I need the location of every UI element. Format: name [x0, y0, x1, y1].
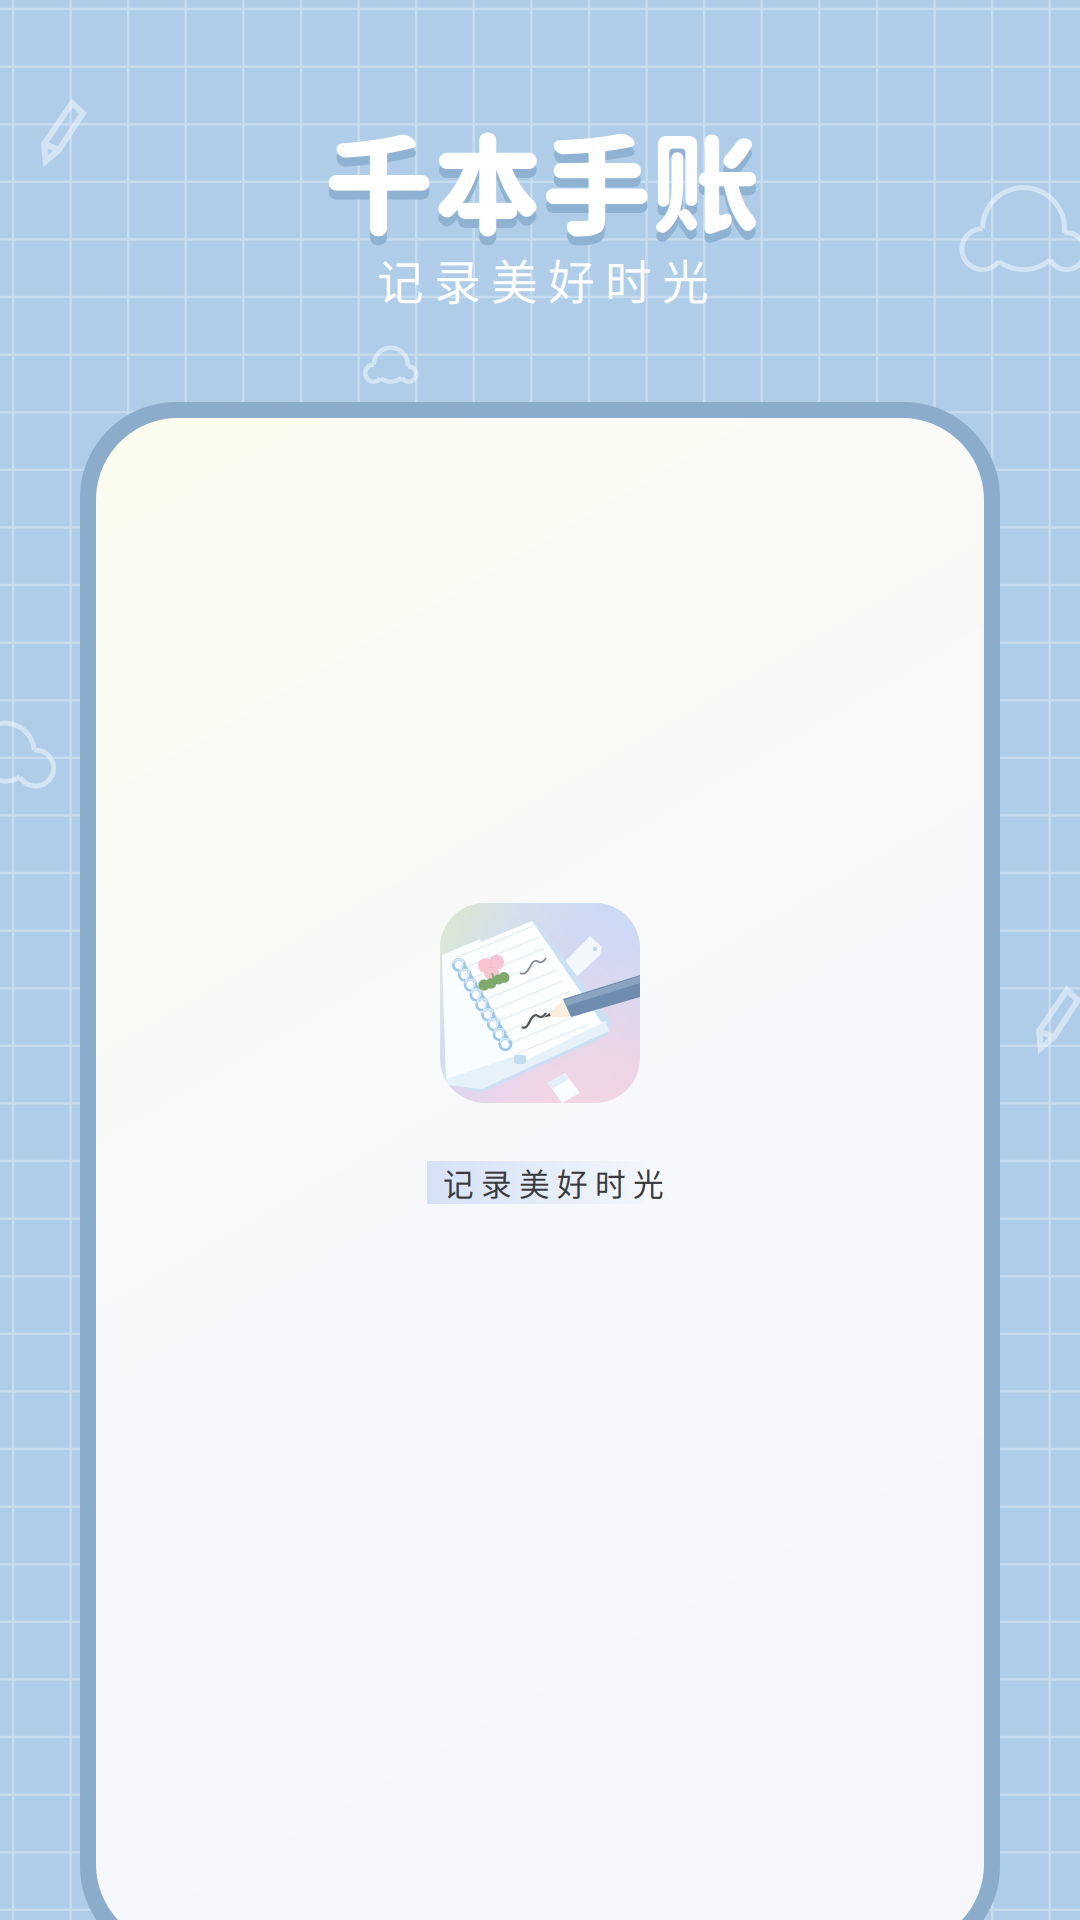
staticText: 千本手账 [324, 120, 760, 249]
staticText: 记 录 美 好 时 光 [443, 1160, 664, 1205]
staticText: 记 录 美 好 时 光 [377, 245, 709, 313]
staticText: 千本手账 [324, 129, 760, 258]
